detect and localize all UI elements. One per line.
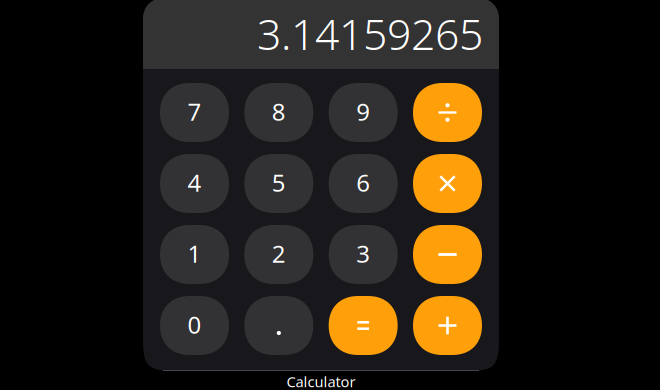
button[interactable]: 2: [244, 225, 313, 284]
button[interactable]: 6: [329, 154, 398, 213]
staticText: 3.14159265: [257, 5, 483, 62]
staticText: Calculator: [286, 372, 355, 390]
button[interactable]: Subtract: [413, 225, 482, 284]
button[interactable]: Equals: [329, 296, 398, 355]
button[interactable]: Multiply: [413, 154, 482, 213]
staticText: 5: [272, 167, 286, 198]
staticText: 9: [356, 96, 370, 127]
button[interactable]: Add: [413, 296, 482, 355]
button[interactable]: 5: [244, 154, 313, 213]
staticText: 6: [356, 167, 370, 198]
staticText: 4: [187, 167, 201, 198]
button[interactable]: 3: [329, 225, 398, 284]
button[interactable]: 1: [160, 225, 229, 284]
button[interactable]: 0: [160, 296, 229, 355]
staticText: 1: [187, 238, 201, 269]
staticText: 2: [272, 238, 286, 269]
staticText: 3: [356, 238, 370, 269]
button[interactable]: 9: [329, 83, 398, 142]
button[interactable]: Divide: [413, 83, 482, 142]
button[interactable]: 4: [160, 154, 229, 213]
button[interactable]: 7: [160, 83, 229, 142]
staticText: 7: [187, 96, 201, 127]
staticText: 0: [187, 309, 201, 340]
button[interactable]: Decimal point: [244, 296, 313, 355]
staticText: 8: [272, 96, 286, 127]
button[interactable]: 8: [244, 83, 313, 142]
